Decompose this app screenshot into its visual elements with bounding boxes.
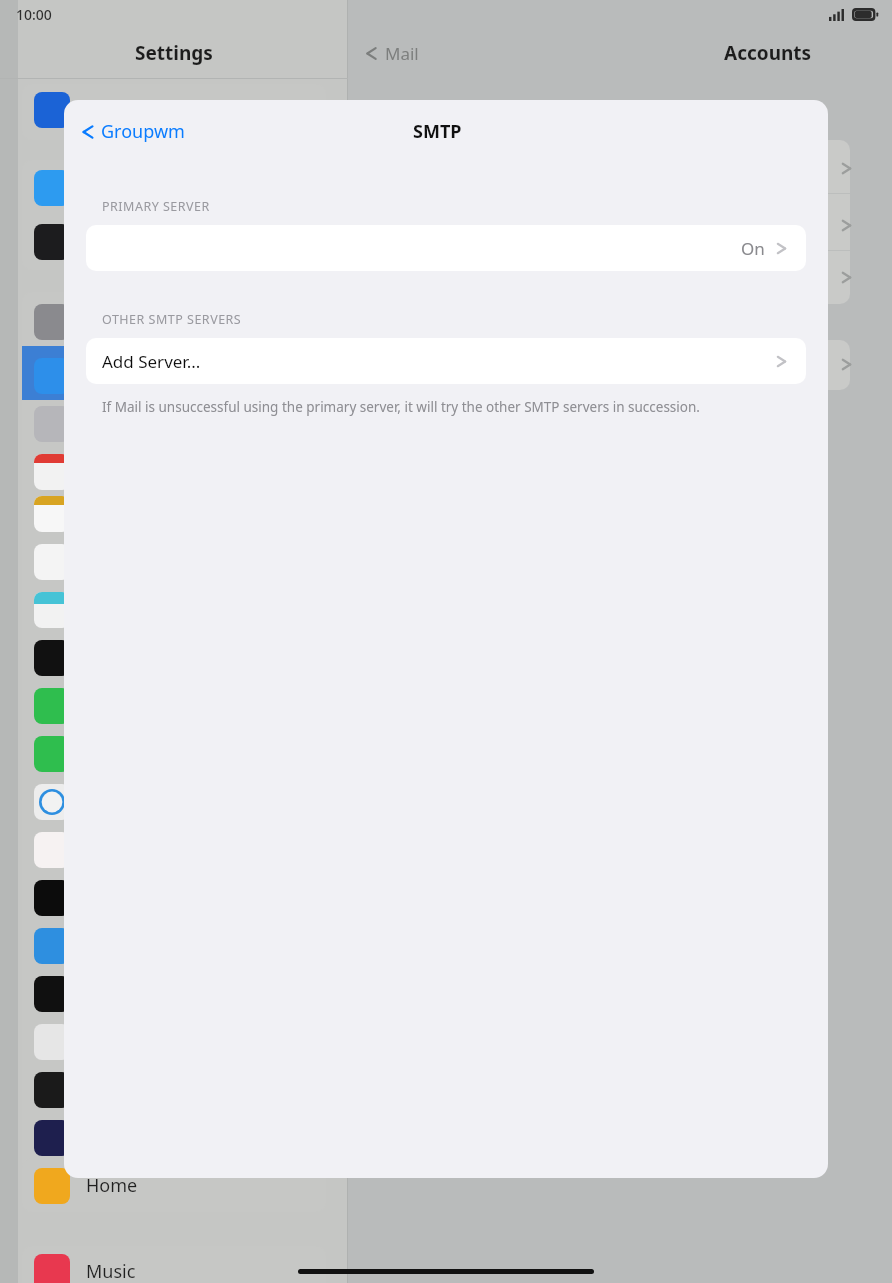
staticText: Music (86, 1259, 136, 1283)
staticText: Groupwm (101, 119, 185, 144)
staticText: PRIMARY SERVER (102, 198, 210, 215)
button[interactable]: Groupwm (72, 113, 191, 150)
staticText: Mail (385, 42, 419, 65)
staticText: Accounts (724, 40, 812, 66)
button[interactable]: Add Server... (86, 338, 806, 384)
staticText: Privacy & Security (78, 96, 220, 119)
staticText: On (741, 237, 765, 260)
staticText: SMTP (413, 119, 462, 144)
staticText: OTHER SMTP SERVERS (102, 311, 242, 328)
staticText: Settings (135, 40, 213, 66)
button[interactable]: On (86, 225, 806, 271)
staticText: Add Server... (102, 350, 201, 373)
staticText: 10:00 (16, 5, 52, 24)
staticText: Home (86, 1173, 138, 1198)
staticText: If Mail is unsuccessful using the primar… (102, 398, 700, 416)
